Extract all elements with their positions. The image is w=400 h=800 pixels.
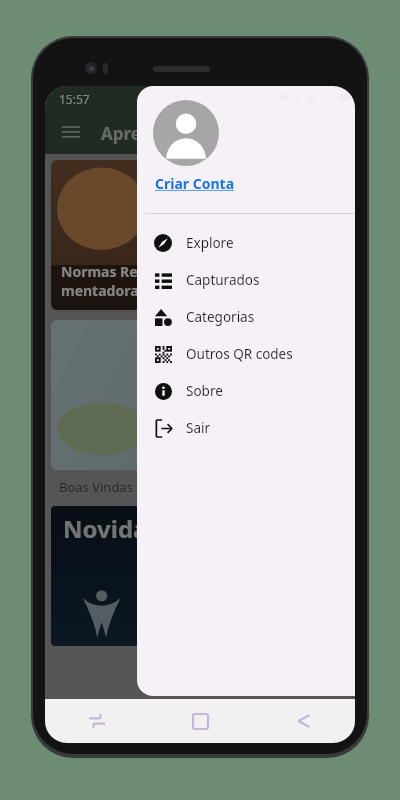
staticText: 15:57 — [59, 91, 90, 107]
button[interactable]: Capturados — [137, 261, 355, 298]
button[interactable]: Sair — [137, 409, 355, 446]
staticText: Boas Vindas — [59, 478, 133, 496]
button[interactable]: Sobre — [137, 372, 355, 409]
staticText: Criar Conta — [155, 174, 235, 193]
staticText: Outros QR codes — [186, 345, 293, 363]
button[interactable]: Open menu — [57, 118, 85, 146]
staticText: Explore — [186, 234, 234, 252]
button[interactable]: Novidades — [51, 506, 349, 646]
staticText: Sair — [186, 419, 211, 437]
button[interactable]: Normas Regula- mentadoras — [51, 160, 349, 310]
staticText: Categorias — [186, 308, 255, 326]
staticText: Início — [99, 712, 133, 730]
button[interactable]: Criar Conta — [155, 174, 235, 193]
staticText: Novidades — [63, 512, 189, 545]
button[interactable]: Explore — [137, 224, 355, 261]
staticText: Sobre — [186, 382, 223, 400]
button[interactable] — [51, 320, 349, 470]
button[interactable]: Home — [149, 699, 252, 743]
button[interactable]: Outros QR codes — [137, 335, 355, 372]
staticText: Capturados — [186, 271, 260, 289]
staticText: Normas Regula- mentadoras — [61, 262, 173, 300]
button[interactable]: Back — [252, 699, 355, 743]
button[interactable]: Início — [55, 712, 133, 730]
button[interactable]: Recent apps — [45, 699, 149, 743]
staticText: Apre — [101, 122, 141, 145]
button[interactable]: Categorias — [137, 298, 355, 335]
